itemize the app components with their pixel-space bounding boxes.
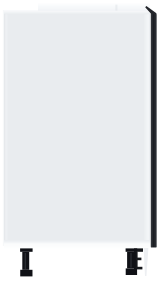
button[interactable]: Product photo: [0, 0, 159, 285]
